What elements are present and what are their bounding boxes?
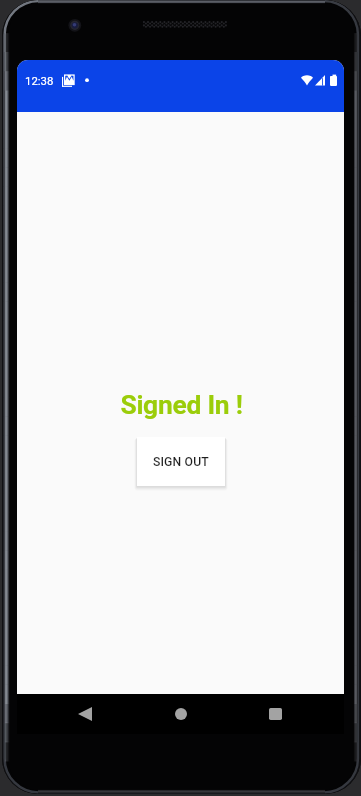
staticText: SIGN OUT xyxy=(153,455,209,469)
button[interactable]: SIGN OUT xyxy=(137,437,225,486)
staticText: Signed In ! xyxy=(18,390,344,421)
button[interactable]: Back xyxy=(71,700,99,728)
button[interactable]: Home xyxy=(167,700,195,728)
staticText: 12:38 xyxy=(25,74,54,87)
button[interactable]: Recents xyxy=(261,700,289,728)
